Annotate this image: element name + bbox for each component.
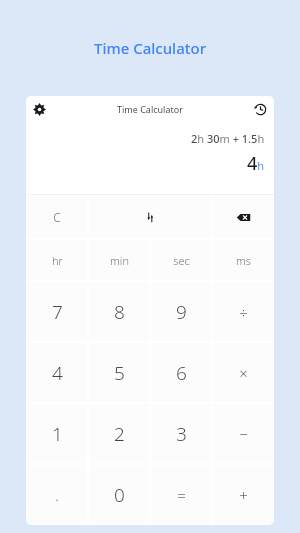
staticText: 0 [114,482,125,508]
button[interactable]: + [213,465,273,524]
button[interactable]: sec [151,240,211,280]
button[interactable]: C [27,196,87,238]
staticText: = [177,485,186,505]
staticText: Time Calculator [0,38,300,58]
button[interactable]: 3 [151,404,211,463]
staticText: 9 [176,299,187,325]
button[interactable]: History [251,100,269,118]
staticText: 5 [114,360,125,386]
staticText: Time Calculator [117,103,183,115]
staticText: 2 [114,421,125,447]
staticText: ÷ [239,302,248,322]
staticText: 8 [114,299,125,325]
staticText: 4h [247,151,265,176]
button[interactable]: hr [27,240,87,280]
staticText: + [239,485,248,505]
button[interactable]: = [151,465,211,524]
button[interactable]: 7 [27,282,87,341]
staticText: sec [173,253,190,268]
staticText: C [53,209,61,225]
button[interactable]: 8 [89,282,149,341]
button[interactable]: 6 [151,343,211,402]
button[interactable]: ms [213,240,273,280]
button[interactable]: 0 [89,465,149,524]
staticText: 1 [52,421,63,447]
staticText: × [239,363,248,383]
staticText: 3 [176,421,187,447]
staticText: min [110,253,129,268]
button[interactable]: 5 [89,343,149,402]
button[interactable]: × [213,343,273,402]
button[interactable]: 2 [89,404,149,463]
button[interactable]: min [89,240,149,280]
staticText: − [239,424,248,444]
button[interactable]: Backspace [213,196,273,238]
staticText: 6 [176,360,187,386]
button[interactable]: Swap units [89,196,211,238]
button[interactable]: 4 [27,343,87,402]
staticText: ms [236,253,251,268]
staticText: 7 [52,299,63,325]
button[interactable]: 9 [151,282,211,341]
button[interactable]: ÷ [213,282,273,341]
button[interactable]: − [213,404,273,463]
button[interactable]: Settings [30,100,48,118]
staticText: hr [52,253,63,268]
button[interactable]: 1 [27,404,87,463]
staticText: 4 [52,360,63,386]
staticText: 2h 30m + 1.5h [191,131,265,146]
staticText: . [55,485,59,505]
